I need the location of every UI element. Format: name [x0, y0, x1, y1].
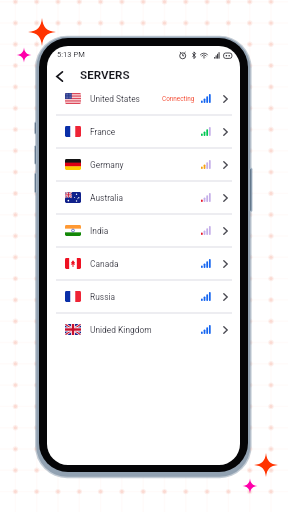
button[interactable]: Russia [47, 281, 240, 312]
staticText: India [90, 226, 109, 236]
button[interactable]: Australia [47, 182, 240, 213]
staticText: Connecting [162, 95, 195, 103]
button[interactable]: India [47, 215, 240, 246]
staticText: France [90, 127, 116, 137]
staticText: Unided Kingdom [90, 325, 152, 335]
button[interactable]: United States [47, 83, 240, 114]
staticText: United States [90, 94, 140, 104]
staticText: Canada [90, 259, 119, 269]
staticText: Australia [90, 193, 124, 203]
button[interactable]: Canada [47, 248, 240, 279]
staticText: Russia [90, 292, 116, 302]
button[interactable]: Germany [47, 149, 240, 180]
staticText: SERVERS [80, 68, 130, 82]
button[interactable]: France [47, 116, 240, 147]
staticText: 5:13 PM [57, 50, 85, 59]
button[interactable]: Unided Kingdom [47, 314, 240, 345]
staticText: Germany [90, 160, 124, 170]
button[interactable]: Back [49, 66, 69, 86]
